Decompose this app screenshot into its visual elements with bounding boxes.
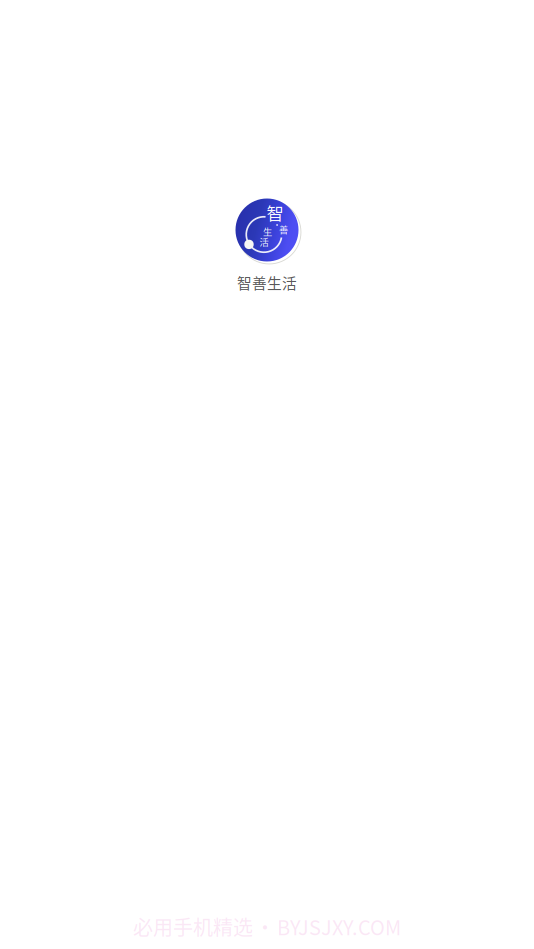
staticText: 智: [266, 200, 283, 225]
staticText: 智善生活: [237, 272, 297, 293]
staticText: 生: [263, 225, 272, 238]
staticText: 善: [279, 223, 288, 236]
button[interactable]: 智善生活: [235, 198, 299, 293]
staticText: 必用手机精选 · BYJSJXY.COM: [133, 912, 401, 941]
staticText: 活: [259, 235, 268, 248]
